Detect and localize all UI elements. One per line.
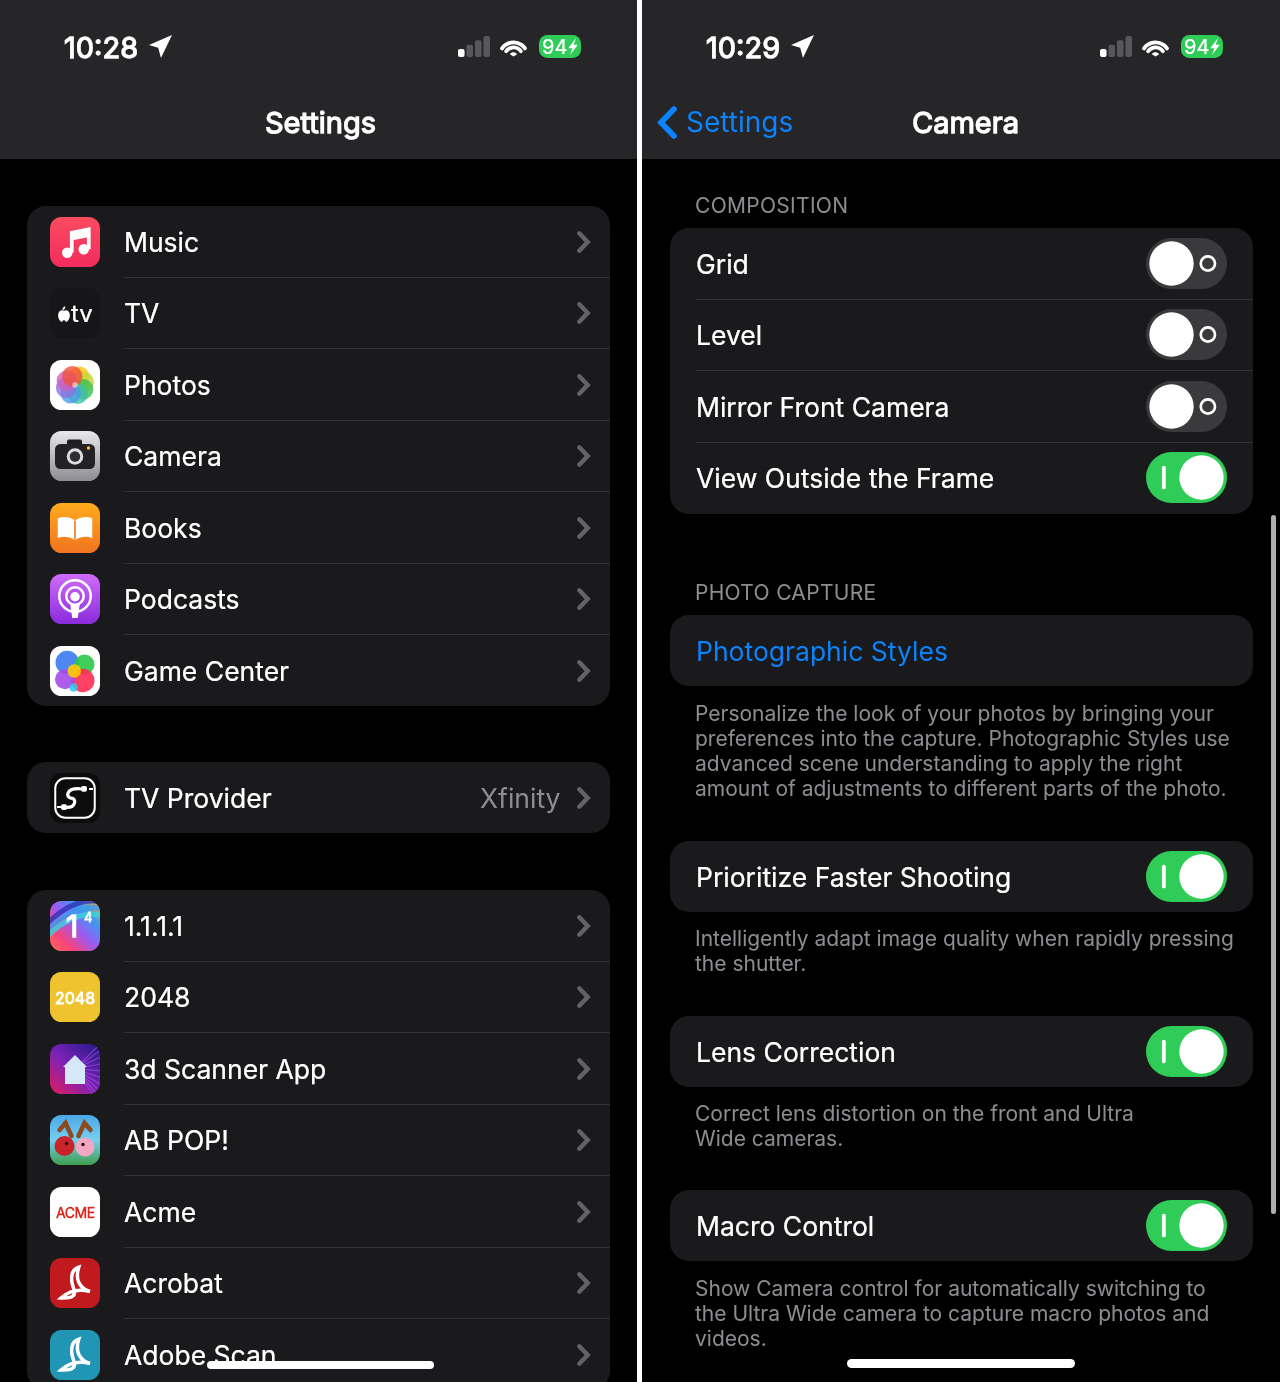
- other: Off: [1146, 238, 1227, 289]
- staticText: COMPOSITION: [695, 193, 849, 218]
- staticText: Xfinity: [480, 782, 561, 814]
- button[interactable]: Camera: [27, 420, 610, 491]
- other: On: [1146, 1200, 1227, 1251]
- button[interactable]: Prioritize Faster Shooting: [670, 841, 1253, 912]
- button[interactable]: tv: [27, 277, 610, 348]
- staticText: 1.1.1.1: [124, 910, 184, 942]
- staticText: 2048: [124, 981, 191, 1013]
- staticText: View Outside the Frame: [696, 462, 995, 494]
- staticText: Acme: [124, 1196, 197, 1228]
- button[interactable]: TV Provider: [27, 762, 610, 833]
- button[interactable]: Macro Control: [670, 1190, 1253, 1261]
- staticText: 10:29: [706, 30, 781, 65]
- staticText: 4: [84, 909, 93, 925]
- staticText: Show Camera control for automatically sw…: [695, 1276, 1215, 1351]
- staticText: Acrobat: [124, 1267, 223, 1299]
- staticText: TV: [124, 297, 160, 329]
- other: Off: [1146, 309, 1227, 360]
- staticText: 10:28: [64, 30, 139, 65]
- other: On: [1146, 851, 1227, 902]
- staticText: 1: [66, 908, 79, 944]
- button[interactable]: View Outside the Frame: [670, 442, 1253, 513]
- staticText: Game Center: [124, 655, 290, 687]
- staticText: Grid: [696, 248, 749, 280]
- other: On: [1146, 452, 1227, 503]
- button[interactable]: Photographic Styles: [670, 615, 1253, 686]
- staticText: Prioritize Faster Shooting: [696, 861, 1012, 893]
- staticText: Settings: [265, 105, 377, 140]
- staticText: PHOTO CAPTURE: [695, 580, 877, 605]
- button[interactable]: ACME: [27, 1176, 610, 1247]
- button[interactable]: Grid: [670, 228, 1253, 299]
- button[interactable]: AB POP!: [27, 1104, 610, 1175]
- staticText: 3d Scanner App: [124, 1053, 327, 1085]
- other: Off: [1146, 381, 1227, 432]
- staticText: Personalize the look of your photos by b…: [695, 701, 1243, 801]
- staticText: Camera: [912, 105, 1019, 140]
- staticText: AB POP!: [124, 1124, 229, 1156]
- button[interactable]: Acrobat: [27, 1247, 610, 1318]
- staticText: Settings: [686, 105, 794, 139]
- button[interactable]: Podcasts: [27, 563, 610, 634]
- staticText: Adobe Scan: [124, 1339, 277, 1371]
- button[interactable]: Books: [27, 492, 610, 563]
- staticText: ACME: [56, 1204, 95, 1221]
- staticText: 94: [542, 35, 568, 58]
- staticText: Music: [124, 226, 200, 258]
- button[interactable]: Lens Correction: [670, 1016, 1253, 1087]
- staticText: TV Provider: [124, 782, 272, 814]
- staticText: Correct lens distortion on the front and…: [695, 1101, 1160, 1151]
- button[interactable]: Level: [670, 299, 1253, 370]
- staticText: Photographic Styles: [696, 635, 948, 667]
- staticText: Lens Correction: [696, 1036, 896, 1068]
- staticText: Level: [696, 319, 763, 351]
- button[interactable]: Game Center: [27, 635, 610, 706]
- other: On: [1146, 1026, 1227, 1077]
- button[interactable]: 3d Scanner App: [27, 1033, 610, 1104]
- button[interactable]: Music: [27, 206, 610, 277]
- staticText: Books: [124, 512, 202, 544]
- staticText: 2048: [55, 988, 96, 1007]
- button[interactable]: Photos: [27, 349, 610, 420]
- staticText: Macro Control: [696, 1210, 875, 1242]
- staticText: Intelligently adapt image quality when r…: [695, 926, 1243, 976]
- staticText: Camera: [124, 440, 222, 472]
- staticText: Podcasts: [124, 583, 240, 615]
- button[interactable]: Adobe Scan: [27, 1319, 610, 1382]
- staticText: tv: [71, 299, 93, 328]
- button[interactable]: Mirror Front Camera: [670, 371, 1253, 442]
- staticText: 94: [1184, 35, 1210, 58]
- button[interactable]: Settings: [654, 103, 798, 141]
- button[interactable]: 2048: [27, 961, 610, 1032]
- staticText: Mirror Front Camera: [696, 391, 950, 423]
- button[interactable]: 1: [27, 890, 610, 961]
- staticText: Photos: [124, 369, 211, 401]
